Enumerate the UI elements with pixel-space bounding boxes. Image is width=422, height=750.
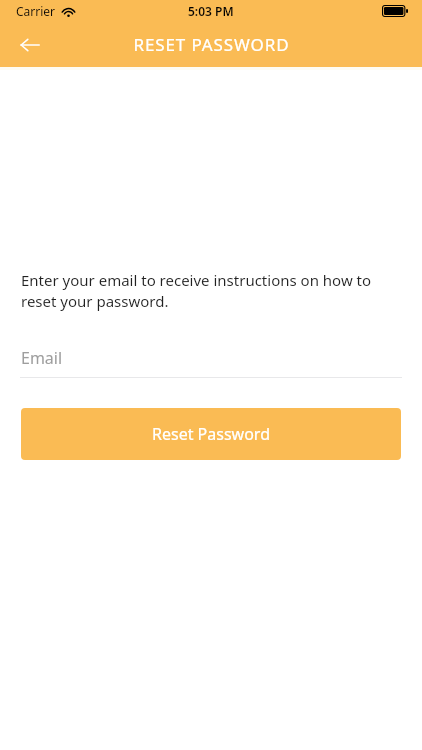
staticText: RESET PASSWORD (133, 33, 290, 56)
staticText: Reset Password (152, 423, 270, 445)
staticText: 5:03 PM (188, 3, 234, 19)
button[interactable]: Reset Password (21, 408, 401, 460)
button[interactable]: Email (20, 345, 402, 378)
staticText: Email (21, 347, 63, 369)
staticText: Enter your email to receive instructions… (21, 270, 401, 312)
staticText: Carrier (16, 3, 56, 19)
button[interactable]: Back (8, 23, 52, 67)
